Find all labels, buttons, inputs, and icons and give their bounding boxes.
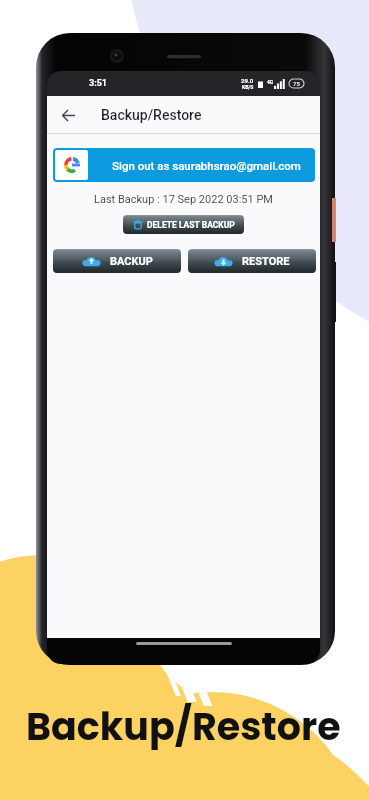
staticText: Backup/Restore bbox=[101, 107, 202, 123]
staticText: RESTORE bbox=[242, 255, 290, 268]
button[interactable]: Back bbox=[55, 102, 81, 128]
button[interactable]: BACKUP bbox=[53, 249, 181, 273]
button[interactable]: RESTORE bbox=[188, 249, 316, 273]
button[interactable]: DELETE LAST BACKUP bbox=[123, 215, 244, 234]
staticText: Backup/Restore bbox=[26, 700, 341, 753]
staticText: 3:51 bbox=[89, 78, 108, 89]
button[interactable]: Sign out as saurabhsrao@gmail.com bbox=[53, 148, 315, 182]
staticText: KB/S bbox=[242, 84, 254, 90]
staticText: 4G bbox=[267, 79, 274, 85]
staticText: DELETE LAST BACKUP bbox=[147, 220, 235, 230]
staticText: Last Backup : 17 Sep 2022 03:51 PM bbox=[47, 193, 320, 206]
staticText: BACKUP bbox=[110, 255, 153, 268]
staticText: 29.0 bbox=[241, 77, 254, 84]
staticText: 75 bbox=[293, 80, 300, 87]
staticText: Sign out as saurabhsrao@gmail.com bbox=[112, 159, 301, 172]
